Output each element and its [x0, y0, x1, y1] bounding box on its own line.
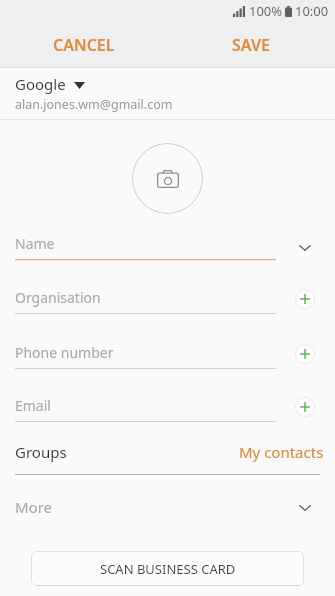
staticText: Email: [15, 396, 51, 415]
staticText: SAVE: [232, 34, 270, 56]
button[interactable]: SAVE: [167, 26, 335, 64]
staticText: Phone number: [15, 343, 114, 362]
staticText: My contacts: [239, 442, 324, 462]
button[interactable]: More: [0, 487, 335, 527]
button[interactable]: SCAN BUSINESS CARD: [31, 551, 304, 586]
staticText: 10:00: [295, 2, 329, 20]
button[interactable]: Expand Name: [291, 234, 319, 262]
button[interactable]: Add Organisation: [291, 285, 319, 313]
staticText: SCAN BUSINESS CARD: [100, 560, 236, 578]
button[interactable]: Add Phone number: [291, 340, 319, 368]
button[interactable]: Add Email: [291, 393, 319, 421]
staticText: Google: [15, 74, 66, 94]
button[interactable]: Email: [0, 389, 335, 421]
button[interactable]: Google: [0, 68, 335, 119]
button[interactable]: Groups: [0, 442, 335, 474]
button[interactable]: Organisation: [0, 281, 335, 313]
button[interactable]: Show more fields: [299, 505, 311, 511]
staticText: Groups: [15, 442, 67, 462]
staticText: 100%: [249, 2, 283, 20]
staticText: Organisation: [15, 288, 101, 307]
staticText: Name: [15, 234, 55, 253]
staticText: More: [15, 497, 53, 517]
staticText: alan.jones.wm@gmail.com: [15, 96, 173, 113]
button[interactable]: Phone number: [0, 336, 335, 368]
button[interactable]: Name: [0, 227, 335, 259]
staticText: CANCEL: [53, 34, 115, 56]
button[interactable]: CANCEL: [0, 26, 167, 64]
button[interactable]: Add contact photo: [132, 143, 203, 214]
